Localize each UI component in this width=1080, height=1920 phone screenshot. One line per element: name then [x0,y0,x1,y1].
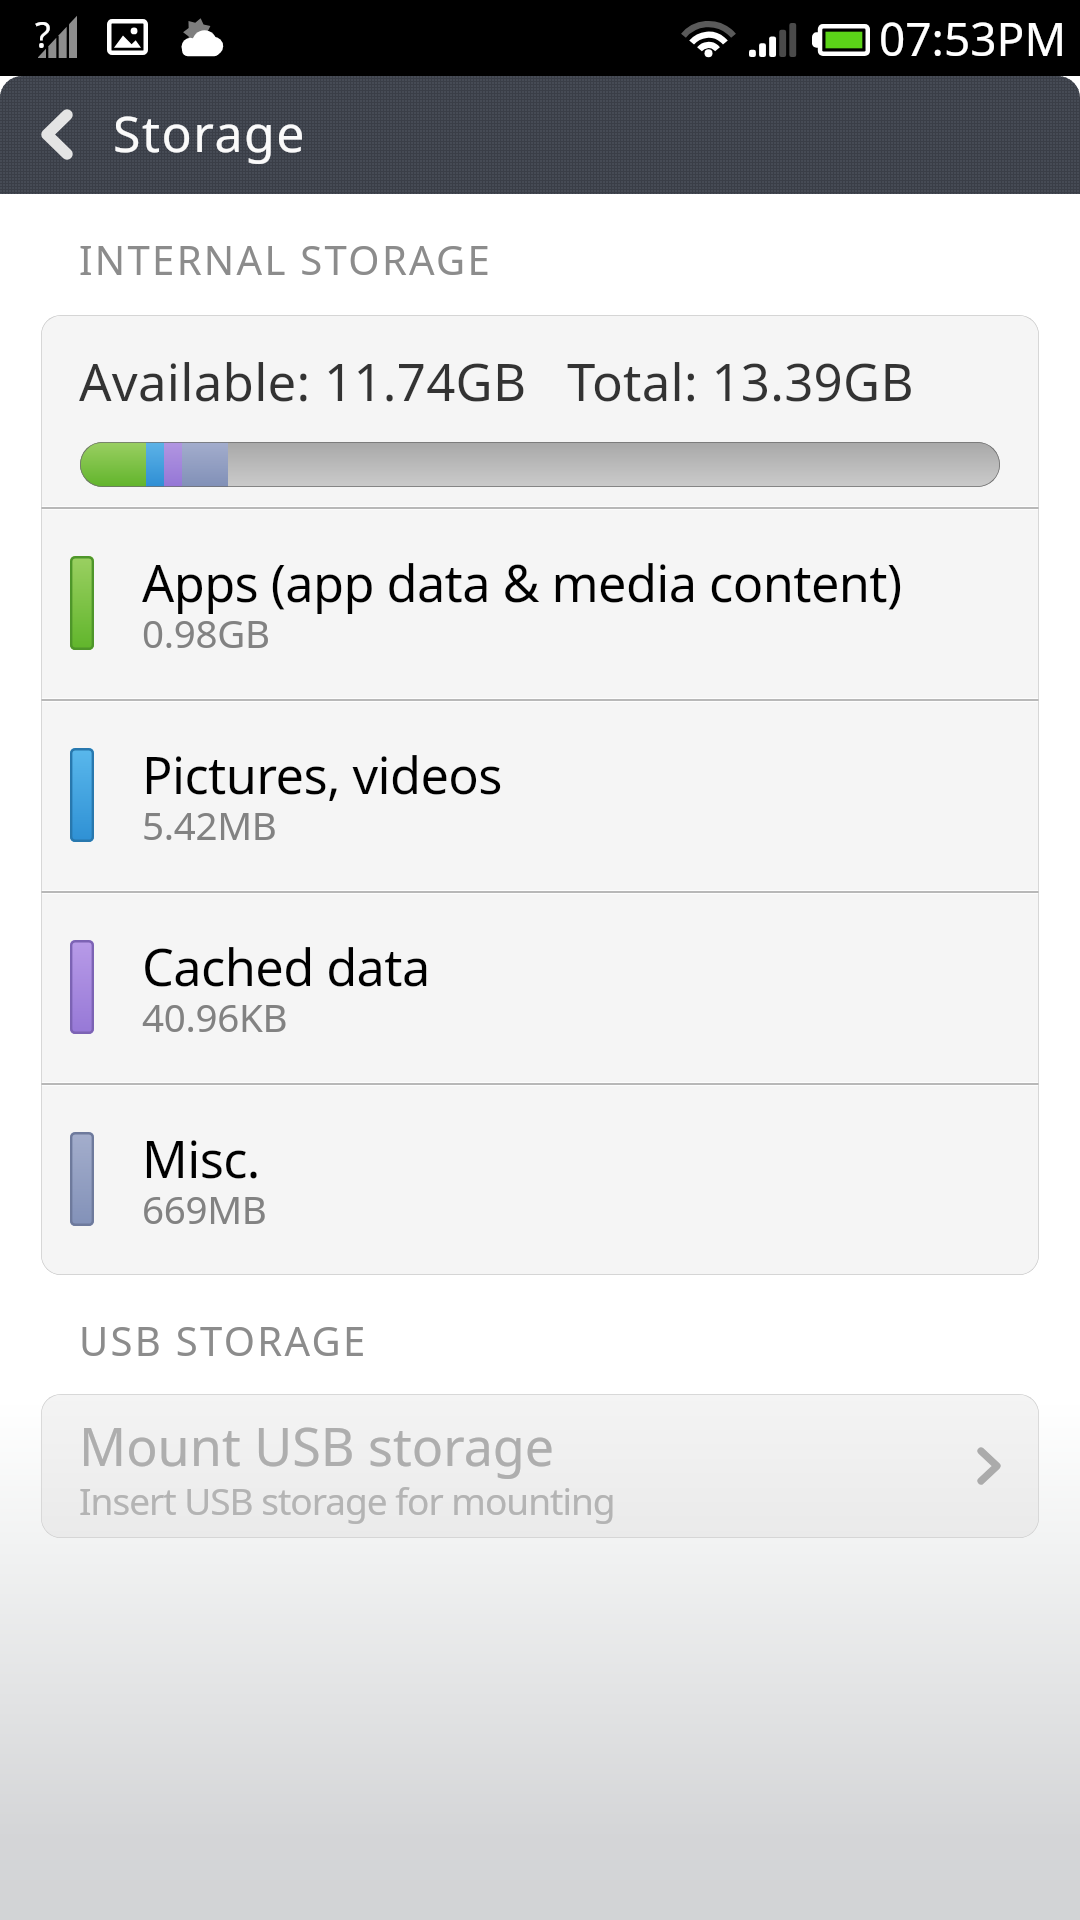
staticText: Misc. [142,1124,260,1193]
button[interactable]: Misc. [41,1086,1039,1274]
button[interactable]: Apps (app data & media content) [41,510,1039,698]
staticText: Insert USB storage for mounting [79,1475,615,1525]
staticText: Available: 11.74GB Total: 13.39GB [79,346,914,415]
button[interactable]: Cached data [41,894,1039,1082]
staticText: Mount USB storage [79,1410,555,1481]
staticText: Cached data [142,932,430,1001]
staticText: 40.96KB [142,991,288,1043]
button[interactable]: Back [0,76,112,194]
button[interactable]: Pictures, videos [41,702,1039,890]
button[interactable]: Back [0,76,1080,194]
staticText: Apps (app data & media content) [142,548,902,617]
staticText: USB STORAGE [79,1313,368,1367]
staticText: 669MB [142,1183,267,1235]
staticText: 07:53PM [879,7,1067,70]
staticText: 0.98GB [142,607,270,659]
button[interactable]: Mount USB storage [41,1394,1039,1538]
staticText: 5.42MB [142,799,277,851]
staticText: INTERNAL STORAGE [79,232,493,286]
staticText: Pictures, videos [142,740,502,809]
staticText: ? [35,10,51,53]
staticText: Storage [113,99,306,167]
